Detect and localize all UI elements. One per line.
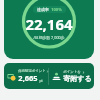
staticText: 2,665 — [18, 73, 38, 83]
other: Donate points — [52, 72, 61, 81]
staticText: 寄附する — [63, 74, 92, 83]
staticText: 保有暫定ポイント — [18, 69, 46, 73]
staticText: 100% — [51, 7, 62, 12]
staticText: 達成率 — [37, 7, 49, 12]
other: Points — [7, 72, 16, 81]
button[interactable]: Donate points — [49, 70, 94, 83]
button[interactable]: 達成率 — [4, 0, 94, 59]
button[interactable]: Points — [4, 69, 48, 83]
staticText: ポイントを — [63, 70, 81, 74]
staticText: pt — [39, 79, 43, 83]
staticText: /目標歩数 7,000歩 — [33, 35, 65, 40]
staticText: 22,164 — [25, 14, 73, 34]
